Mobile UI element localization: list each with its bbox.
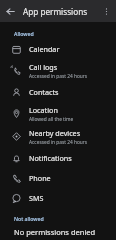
staticText: Call logs	[29, 62, 58, 72]
button[interactable]: Calendar	[0, 39, 116, 59]
button[interactable]: Contacts	[0, 82, 116, 102]
staticText: Notifications	[29, 153, 72, 163]
staticText: Contacts	[29, 87, 59, 97]
button[interactable]: More options	[97, 2, 115, 20]
staticText: App permissions	[23, 6, 88, 17]
staticText: Location	[29, 105, 58, 115]
staticText: Nearby devices	[29, 128, 81, 138]
button[interactable]: Call logs	[0, 59, 116, 82]
staticText: Accessed in past 24 hours	[29, 139, 88, 146]
staticText: Accessed in past 24 hours	[29, 73, 88, 80]
staticText: No permissions denied	[14, 227, 96, 237]
staticText: Allowed	[14, 30, 34, 37]
staticText: Not allowed	[14, 215, 44, 222]
button[interactable]: Notifications	[0, 148, 116, 168]
button[interactable]: Phone	[0, 168, 116, 188]
button[interactable]: No permissions denied	[0, 224, 116, 240]
staticText: SMS	[29, 193, 44, 203]
button[interactable]: Back	[0, 1, 20, 21]
button[interactable]: Nearby devices	[0, 125, 116, 148]
button[interactable]: Location	[0, 102, 116, 125]
staticText: Phone	[29, 173, 51, 183]
staticText: Calendar	[29, 44, 60, 54]
staticText: Allowed all the time	[29, 116, 74, 123]
button[interactable]: SMS	[0, 188, 116, 208]
